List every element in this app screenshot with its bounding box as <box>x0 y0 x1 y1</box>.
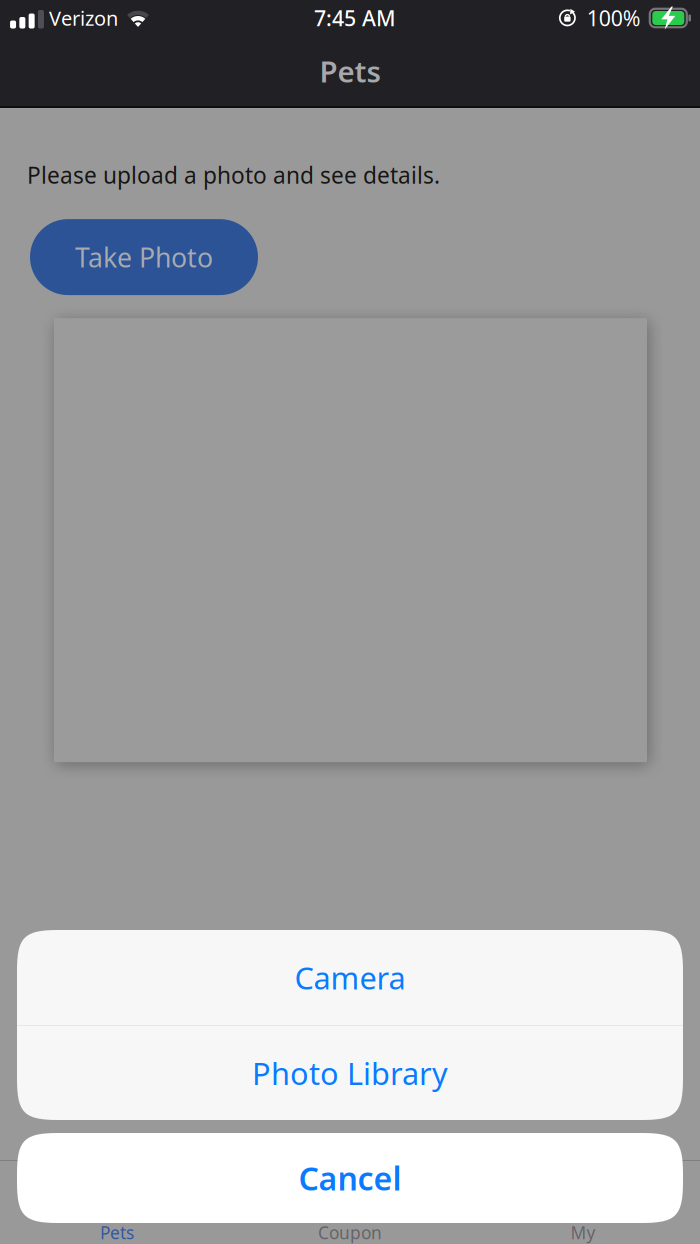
button[interactable]: Pets <box>0 1161 233 1244</box>
button[interactable]: Photo Library <box>17 1026 683 1120</box>
staticText: My <box>570 1221 595 1244</box>
staticText: Pets <box>319 51 380 90</box>
button[interactable]: My <box>466 1161 699 1244</box>
button[interactable]: Take Photo <box>30 219 258 295</box>
staticText: 100% <box>587 4 641 32</box>
staticText: 7:45 AM <box>314 4 396 32</box>
staticText: Please upload a photo and see details. <box>27 160 440 190</box>
staticText: Photo Library <box>252 1053 448 1093</box>
staticText: Verizon <box>49 5 118 31</box>
button[interactable]: Coupon <box>233 1161 466 1244</box>
button[interactable]: Cancel <box>17 1133 683 1223</box>
button[interactable]: Camera <box>17 930 683 1025</box>
staticText: Coupon <box>318 1221 382 1244</box>
staticText: Cancel <box>298 1157 401 1199</box>
staticText: Pets <box>100 1221 134 1244</box>
staticText: Take Photo <box>75 239 213 275</box>
staticText: Camera <box>294 957 405 998</box>
